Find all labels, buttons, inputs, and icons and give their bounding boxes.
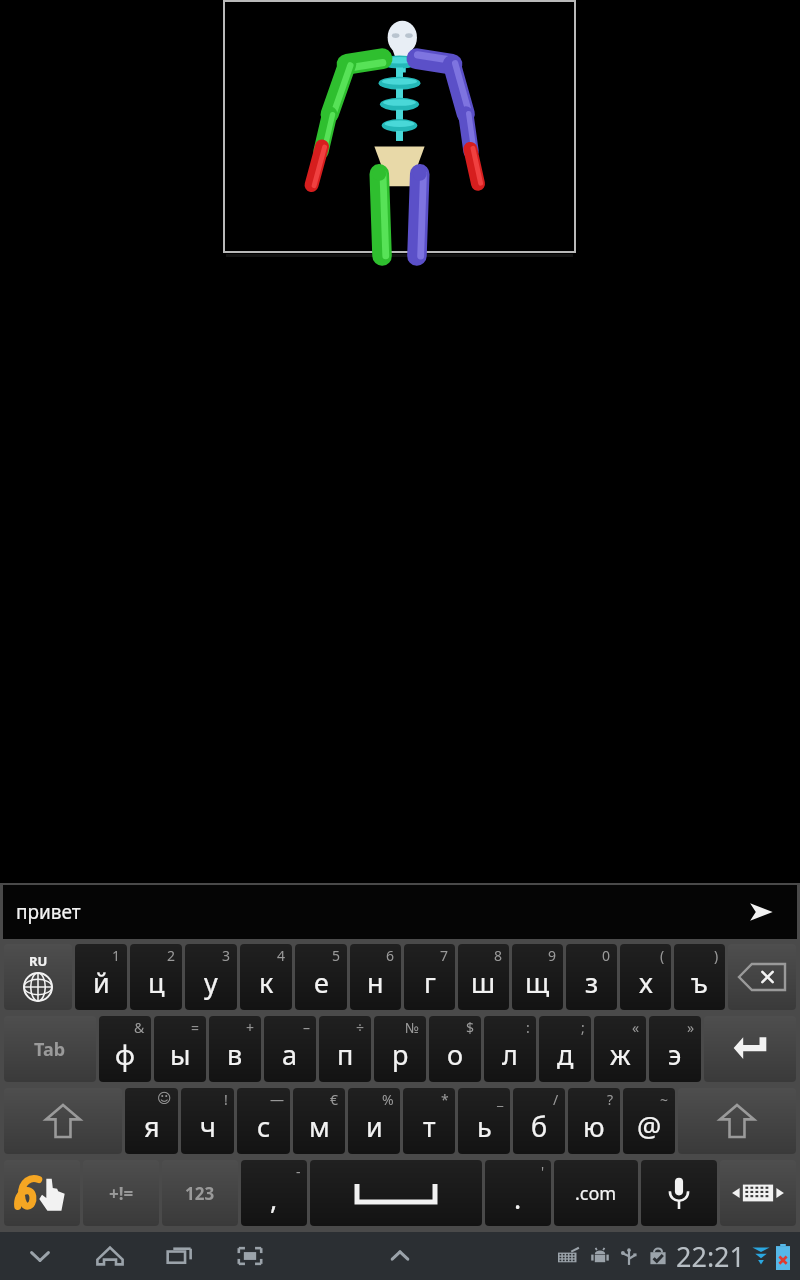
staticText: 5 bbox=[332, 946, 341, 965]
staticText: ) bbox=[714, 946, 719, 965]
staticText: р bbox=[392, 1036, 409, 1073]
button[interactable]: й bbox=[75, 944, 127, 1010]
staticText: .com bbox=[575, 1181, 617, 1206]
button[interactable]: т bbox=[403, 1088, 455, 1154]
button[interactable]: г bbox=[404, 944, 455, 1010]
button[interactable]: н bbox=[350, 944, 401, 1010]
staticText: + bbox=[246, 1018, 255, 1037]
button[interactable]: Shift bbox=[678, 1088, 796, 1154]
staticText: о bbox=[447, 1036, 464, 1073]
button[interactable]: +!= bbox=[83, 1160, 159, 1226]
button[interactable] bbox=[641, 1160, 717, 1226]
button[interactable]: д bbox=[539, 1016, 591, 1082]
button[interactable]: Hide keyboard bbox=[720, 1160, 796, 1226]
button[interactable]: Send bbox=[743, 894, 779, 930]
button[interactable]: ю bbox=[568, 1088, 620, 1154]
button[interactable]: б bbox=[513, 1088, 565, 1154]
staticText: ☺ bbox=[157, 1090, 172, 1106]
staticText: л bbox=[502, 1036, 518, 1073]
staticText: и bbox=[366, 1108, 383, 1145]
button[interactable]: Backspace bbox=[728, 944, 796, 1010]
staticText: & bbox=[134, 1018, 145, 1037]
button[interactable]: о bbox=[429, 1016, 481, 1082]
staticText: RU bbox=[29, 952, 48, 970]
button[interactable]: л bbox=[484, 1016, 536, 1082]
staticText: 0 bbox=[602, 946, 611, 965]
button[interactable]: Back bbox=[18, 1234, 62, 1278]
staticText: е bbox=[314, 964, 329, 1001]
button[interactable]: 123 bbox=[162, 1160, 238, 1226]
staticText: а bbox=[282, 1036, 298, 1073]
button[interactable]: м bbox=[293, 1088, 345, 1154]
button[interactable]: ж bbox=[594, 1016, 646, 1082]
staticText: х bbox=[639, 964, 653, 1001]
button[interactable]: э bbox=[649, 1016, 701, 1082]
staticText: ! bbox=[224, 1090, 228, 1109]
staticText: ; bbox=[581, 1018, 585, 1037]
staticText: д bbox=[557, 1036, 574, 1073]
staticText: 7 bbox=[440, 946, 449, 965]
button[interactable]: Expand bbox=[378, 1234, 422, 1278]
button[interactable]: с bbox=[237, 1088, 290, 1154]
button[interactable]: ы bbox=[154, 1016, 206, 1082]
button[interactable]: з bbox=[566, 944, 617, 1010]
button[interactable]: Screenshot bbox=[228, 1234, 272, 1278]
staticText: ? bbox=[607, 1090, 614, 1109]
button[interactable]: @ bbox=[623, 1088, 675, 1154]
button[interactable]: я bbox=[125, 1088, 178, 1154]
button[interactable]: Handwriting bbox=[4, 1160, 80, 1226]
staticText: ц bbox=[148, 964, 165, 1001]
staticText: +!= bbox=[109, 1182, 134, 1205]
button[interactable]: 22:21 bbox=[558, 1238, 790, 1275]
staticText: » bbox=[687, 1018, 695, 1037]
button[interactable]: х bbox=[620, 944, 671, 1010]
staticText: м bbox=[309, 1108, 330, 1145]
button[interactable]: Enter bbox=[704, 1016, 796, 1082]
button[interactable]: у bbox=[185, 944, 237, 1010]
button[interactable]: Shift bbox=[4, 1088, 122, 1154]
staticText: @ bbox=[637, 1108, 662, 1145]
staticText: я bbox=[144, 1108, 160, 1145]
staticText: * bbox=[441, 1090, 449, 1109]
button[interactable]: ш bbox=[458, 944, 509, 1010]
button[interactable]: ф bbox=[99, 1016, 151, 1082]
staticText: € bbox=[330, 1090, 339, 1109]
button[interactable]: е bbox=[295, 944, 347, 1010]
button[interactable]: Language bbox=[4, 944, 72, 1010]
button[interactable]: и bbox=[348, 1088, 400, 1154]
button[interactable]: ъ bbox=[674, 944, 725, 1010]
staticText: 4 bbox=[277, 946, 286, 965]
staticText: ÷ bbox=[356, 1018, 365, 1037]
staticText: ы bbox=[170, 1036, 191, 1073]
button[interactable]: Recents bbox=[158, 1234, 202, 1278]
staticText: н bbox=[367, 964, 384, 1001]
button[interactable]: п bbox=[319, 1016, 371, 1082]
staticText: 1 bbox=[112, 946, 121, 965]
staticText: п bbox=[337, 1036, 354, 1073]
staticText: % bbox=[382, 1090, 394, 1109]
staticText: ж bbox=[610, 1036, 631, 1073]
staticText: — bbox=[270, 1090, 284, 1109]
button[interactable]: ь bbox=[458, 1088, 510, 1154]
button[interactable]: к bbox=[240, 944, 292, 1010]
staticText: э bbox=[668, 1036, 682, 1073]
button[interactable]: , bbox=[241, 1160, 307, 1226]
button[interactable]: . bbox=[485, 1160, 551, 1226]
button[interactable]: привет bbox=[3, 885, 797, 939]
button[interactable]: ц bbox=[130, 944, 182, 1010]
staticText: / bbox=[553, 1090, 559, 1109]
button[interactable]: щ bbox=[512, 944, 563, 1010]
button[interactable]: в bbox=[209, 1016, 261, 1082]
staticText: т bbox=[423, 1108, 436, 1145]
staticText: ъ bbox=[691, 964, 708, 1001]
button[interactable]: р bbox=[374, 1016, 426, 1082]
button[interactable]: .com bbox=[554, 1160, 638, 1226]
button[interactable] bbox=[310, 1160, 482, 1226]
button[interactable]: Home bbox=[88, 1234, 132, 1278]
button[interactable]: а bbox=[264, 1016, 316, 1082]
staticText: № bbox=[405, 1018, 420, 1037]
button[interactable]: Tab bbox=[4, 1016, 96, 1082]
button[interactable]: ч bbox=[181, 1088, 234, 1154]
staticText: : bbox=[526, 1018, 530, 1037]
staticText: 9 bbox=[548, 946, 557, 965]
